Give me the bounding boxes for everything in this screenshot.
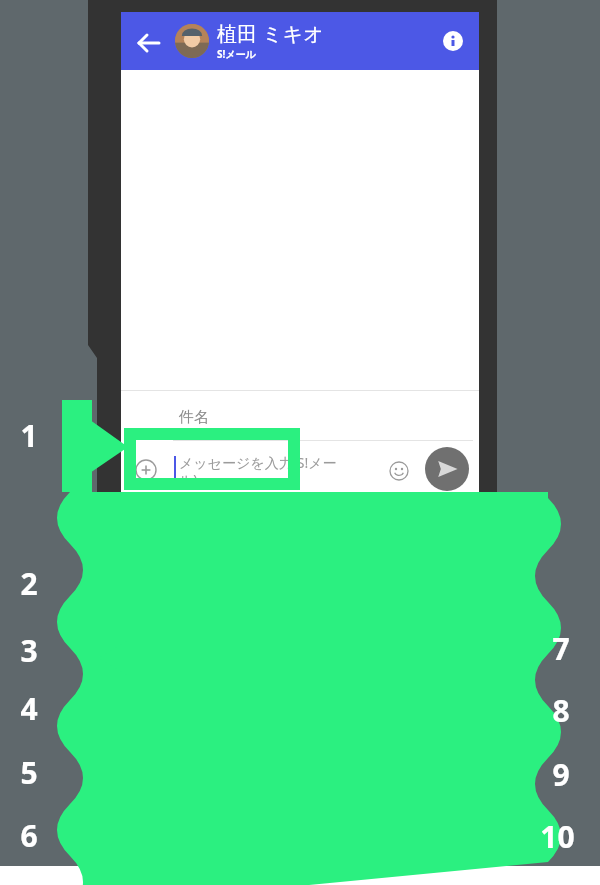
button[interactable]: Emoji	[389, 461, 409, 481]
button[interactable]: Info	[443, 31, 463, 51]
button[interactable]: Send	[425, 447, 469, 491]
button[interactable]: Back	[121, 12, 479, 70]
staticText: 10	[540, 816, 575, 857]
button[interactable]: Attach	[135, 459, 157, 481]
button[interactable]: Attach	[121, 444, 479, 494]
staticText: 2	[20, 563, 38, 604]
staticText: 3	[20, 630, 38, 671]
staticText: メッセージを入力(S!メー ル)	[179, 453, 337, 489]
button[interactable]: Back	[137, 32, 159, 54]
staticText: 8	[552, 690, 570, 731]
